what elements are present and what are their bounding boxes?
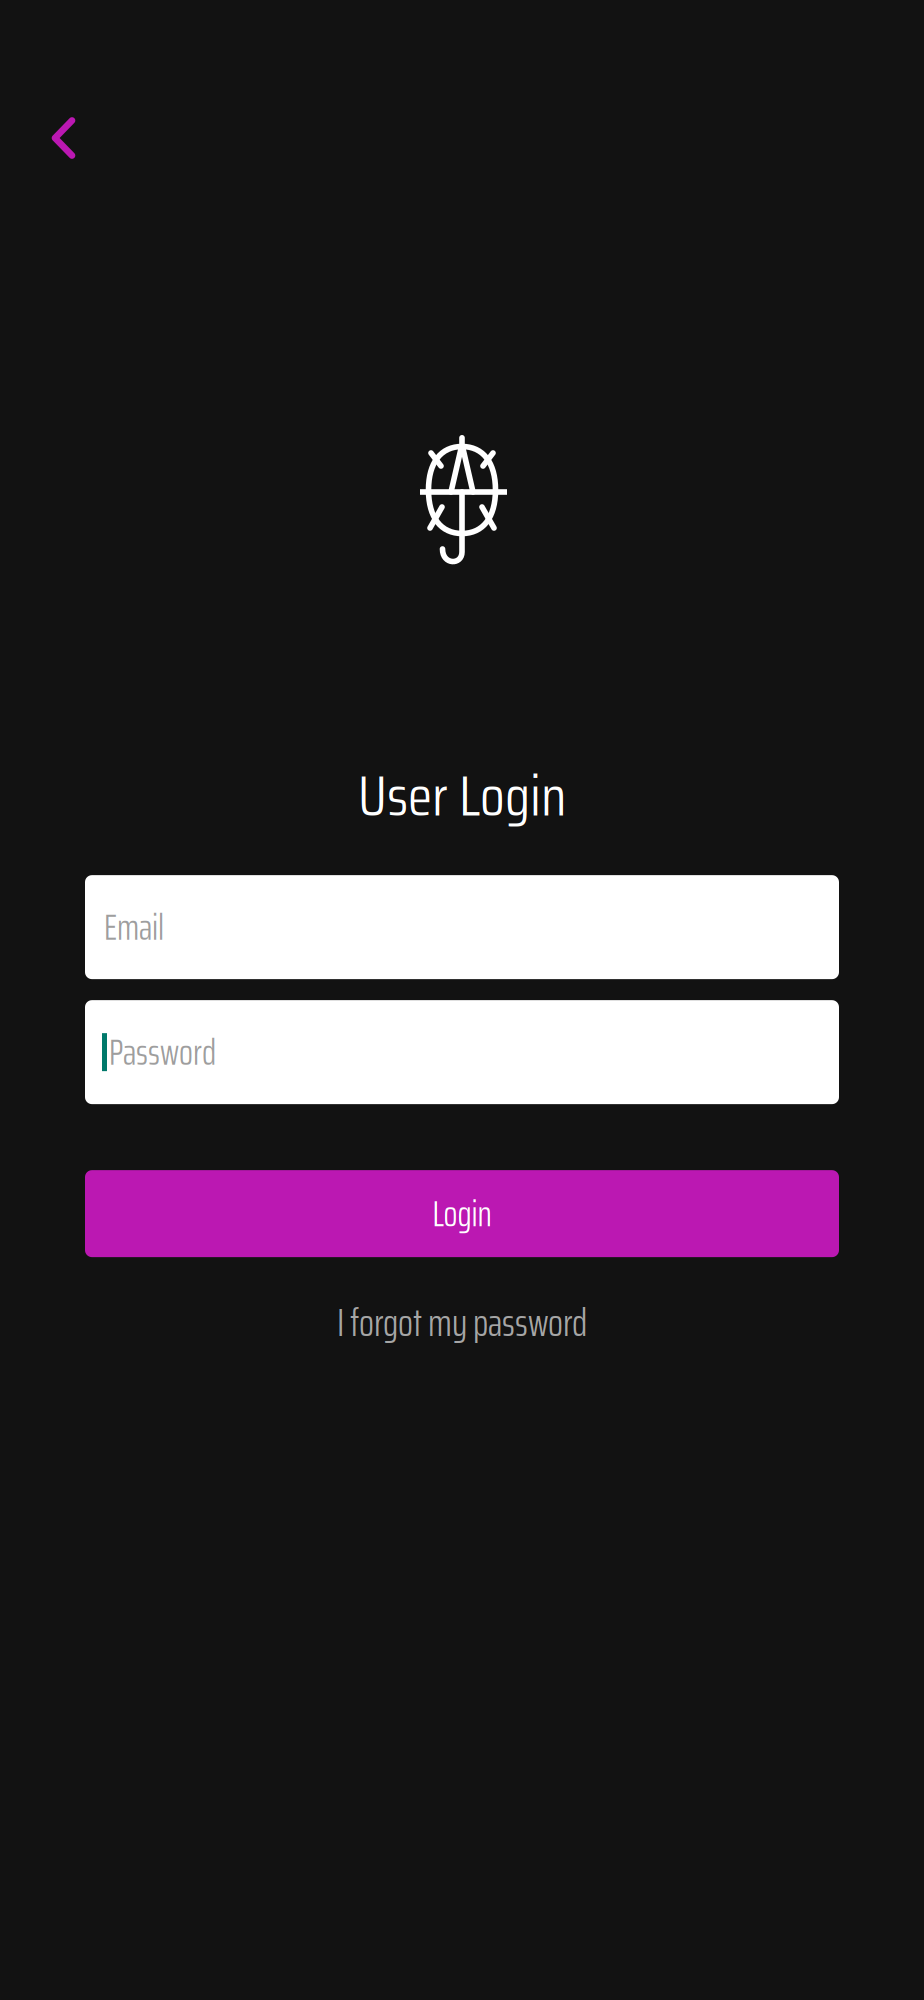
staticText: Login — [432, 1185, 491, 1242]
button[interactable]: Back — [0, 96, 104, 180]
staticText: I forgot my password — [337, 1292, 587, 1353]
button[interactable]: Email — [85, 875, 839, 979]
staticText: Email — [104, 899, 164, 955]
button[interactable]: Password — [85, 1000, 839, 1104]
button[interactable]: Login — [85, 1170, 839, 1257]
staticText: Password — [109, 1024, 216, 1080]
button[interactable]: I forgot my password — [317, 1284, 607, 1361]
staticText: User Login — [358, 752, 566, 840]
